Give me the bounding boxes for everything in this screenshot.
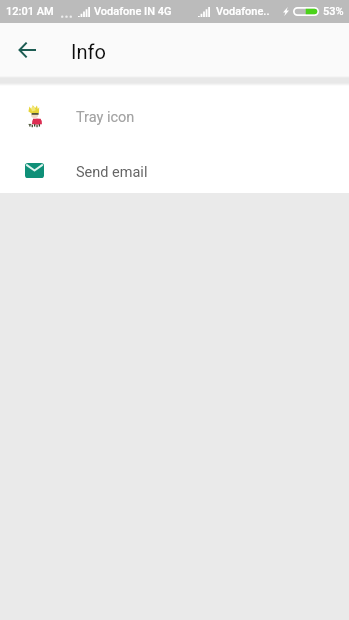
staticText: 12:01 AM — [6, 5, 54, 18]
staticText: Vodafone.. — [216, 5, 270, 18]
staticText: Vodafone IN 4G — [94, 5, 172, 18]
button[interactable]: Send email — [0, 143, 349, 193]
staticText: Tray icon — [76, 109, 135, 126]
button[interactable]: Tray icon — [0, 88, 349, 143]
button[interactable]: Navigate up — [0, 23, 55, 76]
staticText: Send email — [76, 164, 148, 181]
staticText: 53% — [323, 5, 344, 18]
staticText: Info — [71, 40, 106, 63]
